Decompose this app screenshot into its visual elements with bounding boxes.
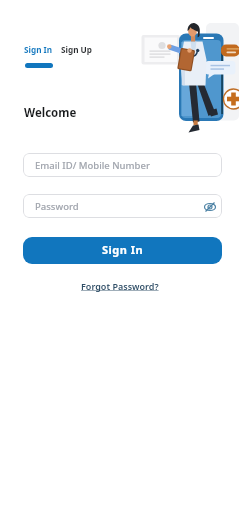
staticText: Forgot Password? [81,280,159,292]
button[interactable]: Sign In [18,38,59,74]
staticText: Sign In [24,44,53,55]
staticText: Sign In [102,242,144,257]
staticText: Password [35,200,79,213]
staticText: Welcome [24,105,77,121]
button[interactable]: Forgot Password? [77,276,163,296]
button[interactable]: Email ID/ Mobile Number [23,153,222,177]
button[interactable]: Password [23,194,222,218]
staticText: Email ID/ Mobile Number [35,159,150,172]
staticText: Sign Up [61,44,92,55]
button[interactable]: Sign Up [55,38,98,61]
button[interactable] [201,197,219,215]
button[interactable]: Sign In [23,237,222,264]
